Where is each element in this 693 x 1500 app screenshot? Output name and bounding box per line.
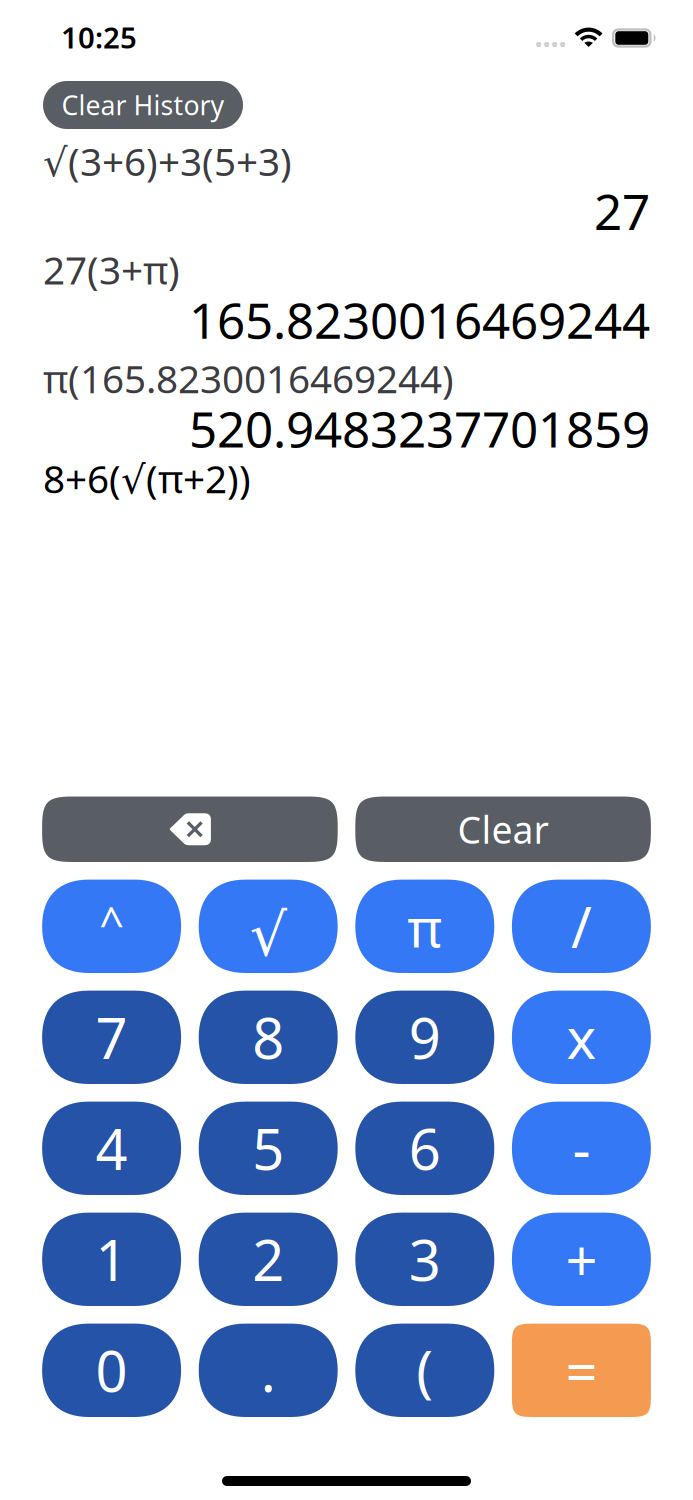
staticText: π(165.8230016469244) [43, 353, 454, 404]
button[interactable]: 0 [42, 1324, 181, 1417]
button[interactable]: - [512, 1102, 651, 1195]
button[interactable]: 7 [42, 991, 181, 1084]
staticText: Clear History [61, 87, 224, 123]
staticText: 5 [252, 1111, 284, 1185]
staticText: 6 [409, 1111, 441, 1185]
staticText: 3 [409, 1222, 441, 1296]
staticText: + [565, 1222, 597, 1296]
button[interactable]: / [512, 880, 651, 973]
button[interactable]: 6 [355, 1102, 494, 1195]
staticText: 27 [594, 178, 650, 244]
staticText: . [261, 1333, 276, 1407]
button[interactable]: 9 [355, 991, 494, 1084]
staticText: = [565, 1333, 597, 1407]
staticText: - [572, 1111, 590, 1185]
button[interactable]: + [512, 1213, 651, 1306]
button[interactable]: 1 [42, 1213, 181, 1306]
button[interactable]: = [512, 1324, 651, 1417]
button[interactable]: 4 [42, 1102, 181, 1195]
staticText: 520.9483237701859 [189, 395, 650, 461]
staticText: / [571, 889, 592, 963]
staticText: π [407, 891, 442, 962]
staticText: 7 [96, 1000, 128, 1074]
staticText: 27(3+π) [43, 244, 180, 295]
staticText: 10:25 [61, 17, 137, 56]
staticText: 165.8230016469244 [189, 287, 650, 352]
staticText: 2 [252, 1222, 284, 1296]
staticText: √(3+6)+3(5+3) [43, 135, 292, 186]
button[interactable]: 2 [199, 1213, 338, 1306]
staticText: 4 [96, 1111, 128, 1185]
button[interactable]: x [512, 991, 651, 1084]
staticText: ^ [99, 893, 124, 951]
staticText: 9 [409, 1000, 441, 1074]
staticText: √ [250, 902, 287, 969]
button[interactable]: 5 [199, 1102, 338, 1195]
button[interactable]: π [355, 880, 494, 973]
staticText: 1 [96, 1222, 128, 1296]
button[interactable]: ^ [42, 880, 181, 973]
staticText: x [566, 1000, 596, 1074]
button[interactable]: 8 [199, 991, 338, 1084]
button[interactable]: 3 [355, 1213, 494, 1306]
button[interactable]: ( [355, 1324, 494, 1417]
button[interactable]: . [199, 1324, 338, 1417]
button[interactable]: √ [199, 880, 338, 973]
button[interactable]: Delete [42, 796, 338, 862]
staticText: 8+6(√(π+2)) [43, 453, 251, 504]
staticText: ( [416, 1333, 433, 1407]
staticText: Clear [458, 804, 549, 854]
button[interactable]: Clear [355, 796, 651, 862]
staticText: 0 [96, 1333, 128, 1407]
button[interactable]: Clear History [43, 81, 243, 129]
staticText: 8 [252, 1000, 284, 1074]
